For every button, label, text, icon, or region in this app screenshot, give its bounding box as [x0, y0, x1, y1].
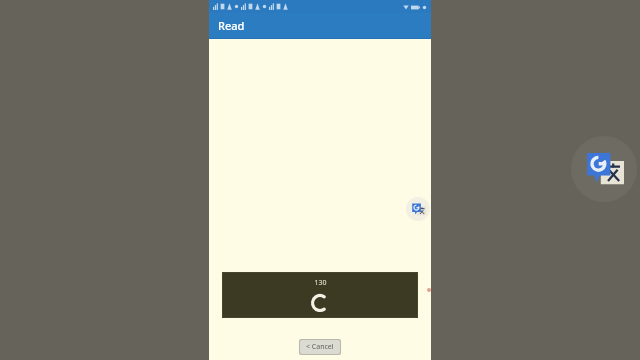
staticText: < Cancel	[306, 342, 334, 352]
button[interactable]: Google Translate	[571, 136, 637, 202]
staticText: 130	[314, 278, 327, 288]
button[interactable]: Read	[209, 13, 431, 38]
button[interactable]: Google Translate	[406, 197, 430, 221]
button[interactable]: < Cancel	[300, 340, 340, 354]
staticText: Read	[218, 18, 245, 33]
